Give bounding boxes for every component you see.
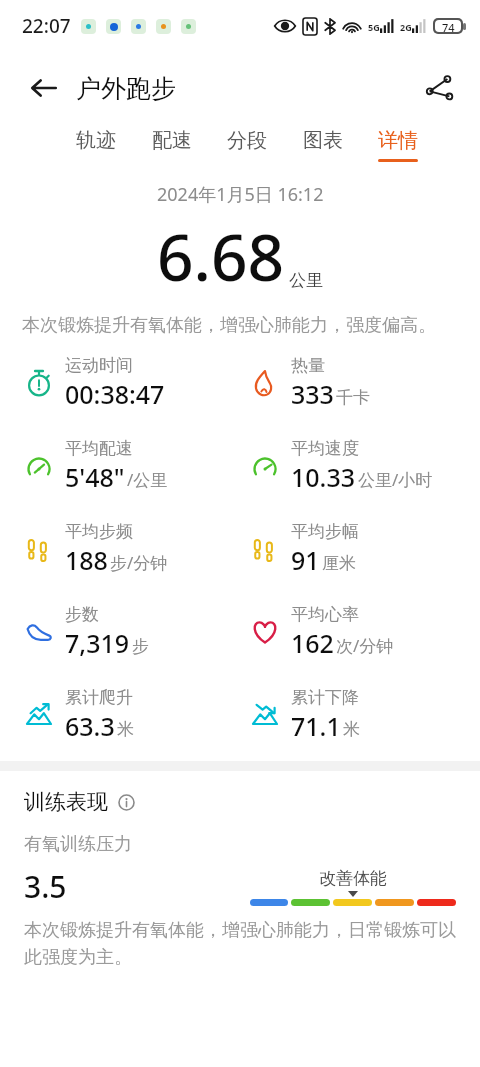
staticText: 轨迹	[76, 128, 116, 153]
staticText: 热量	[291, 355, 325, 376]
button[interactable]: 平均配速	[24, 438, 240, 494]
staticText: 本次锻炼提升有氧体能，增强心肺能力，强度偏高。	[22, 314, 458, 337]
staticText: 63.3	[65, 709, 115, 743]
staticText: 分段	[227, 128, 267, 153]
staticText: 步	[132, 636, 149, 657]
staticText: 7,319	[65, 626, 130, 660]
staticText: 改善体能	[319, 868, 387, 889]
button[interactable]: 步数	[24, 604, 240, 660]
button[interactable]: 平均步幅	[250, 521, 480, 577]
button[interactable]: 轨迹	[74, 124, 118, 166]
staticText: 公里/小时	[358, 468, 433, 491]
staticText: 平均速度	[291, 438, 359, 459]
staticText: 累计爬升	[65, 687, 133, 708]
button[interactable]: Info	[115, 791, 137, 813]
button[interactable]: Share	[416, 65, 462, 111]
staticText: 22:07	[22, 13, 71, 39]
button[interactable]: 平均心率	[250, 604, 480, 660]
staticText: 户外跑步	[76, 73, 176, 104]
button[interactable]: 累计下降	[250, 687, 480, 743]
staticText: 本次锻炼提升有氧体能，增强心肺能力，日常锻炼可以此强度为主。	[24, 919, 456, 969]
staticText: 91	[291, 543, 320, 577]
staticText: 步/分钟	[110, 551, 168, 574]
staticText: 2024年1月5日 16:12	[157, 182, 324, 207]
staticText: 公里	[289, 270, 323, 291]
staticText: 71.1	[291, 709, 341, 743]
staticText: 74	[442, 20, 455, 32]
staticText: 千卡	[336, 387, 370, 408]
staticText: 训练表现	[24, 789, 108, 815]
button[interactable]: 运动时间	[24, 355, 240, 411]
staticText: 平均步频	[65, 521, 133, 542]
button[interactable]: 平均速度	[250, 438, 480, 494]
staticText: 详情	[378, 128, 418, 153]
staticText: 6.68	[157, 213, 285, 300]
staticText: 3.5	[24, 866, 67, 907]
staticText: 累计下降	[291, 687, 359, 708]
staticText: 10.33	[291, 460, 356, 494]
staticText: 2G	[400, 21, 412, 33]
staticText: 平均心率	[291, 604, 359, 625]
staticText: 步数	[65, 604, 99, 625]
staticText: 有氧训练压力	[24, 833, 132, 856]
staticText: 米	[117, 719, 134, 740]
button[interactable]: 热量	[250, 355, 480, 411]
staticText: 188	[65, 543, 108, 577]
button[interactable]: 平均步频	[24, 521, 240, 577]
staticText: 配速	[152, 128, 192, 153]
staticText: 厘米	[322, 553, 356, 574]
staticText: 平均配速	[65, 438, 133, 459]
button[interactable]: 累计爬升	[24, 687, 240, 743]
staticText: 162	[291, 626, 334, 660]
staticText: 5'48"	[65, 460, 125, 494]
button[interactable]: 详情	[376, 124, 420, 166]
staticText: 运动时间	[65, 355, 133, 376]
staticText: 333	[291, 377, 334, 411]
button[interactable]: 分段	[225, 124, 269, 166]
staticText: 00:38:47	[65, 377, 165, 411]
staticText: 次/分钟	[336, 634, 394, 657]
button[interactable]: Back	[22, 66, 66, 110]
button[interactable]: 配速	[150, 124, 194, 166]
staticText: 米	[343, 719, 360, 740]
staticText: 图表	[303, 128, 343, 153]
button[interactable]: 图表	[301, 124, 345, 166]
staticText: /公里	[127, 468, 168, 491]
staticText: 平均步幅	[291, 521, 359, 542]
staticText: 5G	[368, 21, 380, 33]
